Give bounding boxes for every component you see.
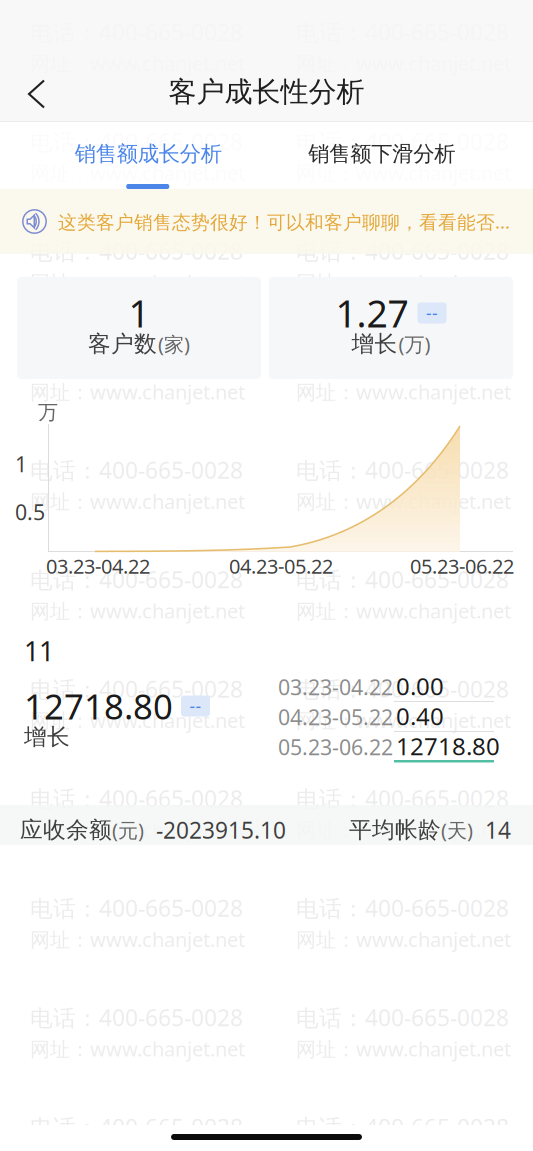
staticText: 1: [15, 450, 27, 478]
staticText: 03.23-04.22: [278, 673, 393, 701]
staticText: 电话：400-665-0028: [296, 1112, 509, 1142]
staticText: 网址：www.chanjet.net: [30, 926, 245, 953]
staticText: 03.23-04.22: [46, 553, 150, 579]
staticText: 网址：www.chanjet.net: [30, 269, 245, 296]
staticText: 销售额下滑分析: [308, 141, 455, 167]
staticText: 这类客户销售态势很好！可以和客户聊聊，看看能否获...: [58, 209, 514, 234]
staticText: 网址：www.chanjet.net: [30, 707, 245, 734]
staticText: 客户成长性分析: [168, 75, 364, 109]
staticText: 电话：400-665-0028: [30, 783, 243, 813]
staticText: 14: [473, 815, 511, 845]
staticText: 网址：www.chanjet.net: [296, 816, 511, 843]
staticText: 电话：400-665-0028: [296, 126, 509, 156]
staticText: 销售额成长分析: [75, 141, 222, 167]
staticText: (家): [158, 331, 190, 357]
staticText: 电话：400-665-0028: [296, 236, 509, 266]
staticText: 0.5: [15, 498, 45, 526]
staticText: 网址：www.chanjet.net: [296, 488, 511, 515]
staticText: 1.27: [335, 288, 408, 338]
staticText: 网址：www.chanjet.net: [296, 378, 511, 405]
staticText: 电话：400-665-0028: [30, 345, 243, 375]
staticText: 11: [24, 633, 54, 669]
staticText: 电话：400-665-0028: [296, 783, 509, 813]
button[interactable]: Back: [0, 70, 71, 114]
staticText: 网址：www.chanjet.net: [30, 1035, 245, 1062]
staticText: 电话：400-665-0028: [30, 236, 243, 266]
staticText: (天): [441, 817, 473, 843]
staticText: 客户数: [88, 330, 157, 358]
staticText: 万: [38, 400, 58, 425]
staticText: 网址：www.chanjet.net: [296, 159, 511, 186]
staticText: 电话：400-665-0028: [30, 455, 243, 485]
staticText: 网址：www.chanjet.net: [30, 159, 245, 186]
staticText: (元): [112, 817, 144, 843]
staticText: 网址：www.chanjet.net: [296, 1035, 511, 1062]
staticText: 12718.80: [396, 730, 500, 762]
staticText: 网址：www.chanjet.net: [30, 597, 245, 624]
staticText: 电话：400-665-0028: [30, 126, 243, 156]
staticText: 电话：400-665-0028: [296, 455, 509, 485]
staticText: 应收余额: [20, 816, 112, 844]
staticText: 网址：www.chanjet.net: [30, 488, 245, 515]
staticText: 1: [128, 288, 149, 338]
staticText: 网址：www.chanjet.net: [296, 597, 511, 624]
staticText: 电话：400-665-0028: [296, 345, 509, 375]
staticText: 04.23-05.22: [278, 703, 393, 731]
button[interactable]: 销售额成长分析: [0, 122, 266, 189]
staticText: (万): [398, 331, 430, 357]
staticText: 电话：400-665-0028: [30, 893, 243, 923]
staticText: 网址：www.chanjet.net: [30, 378, 245, 405]
staticText: 05.23-06.22: [410, 553, 514, 579]
staticText: 电话：400-665-0028: [30, 1112, 243, 1142]
button[interactable]: 销售额下滑分析: [266, 122, 533, 189]
staticText: 网址：www.chanjet.net: [296, 707, 511, 734]
staticText: 电话：400-665-0028: [30, 674, 243, 704]
staticText: 平均帐龄: [349, 816, 441, 844]
staticText: 0.00: [396, 670, 444, 702]
staticText: 增长: [351, 330, 397, 358]
staticText: 网址：www.chanjet.net: [296, 926, 511, 953]
staticText: --: [426, 301, 438, 324]
staticText: 电话：400-665-0028: [296, 1002, 509, 1032]
staticText: 0.40: [396, 700, 444, 732]
staticText: 电话：400-665-0028: [296, 564, 509, 594]
staticText: 网址：www.chanjet.net: [30, 816, 245, 843]
staticText: 电话：400-665-0028: [296, 674, 509, 704]
staticText: 电话：400-665-0028: [296, 893, 509, 923]
staticText: 04.23-05.22: [229, 553, 333, 579]
staticText: -2023915.10: [144, 815, 286, 845]
staticText: 电话：400-665-0028: [30, 1002, 243, 1032]
staticText: 05.23-06.22: [278, 733, 393, 761]
staticText: 增长: [24, 723, 70, 751]
staticText: 网址：www.chanjet.net: [296, 269, 511, 296]
staticText: --: [189, 694, 201, 717]
staticText: 电话：400-665-0028: [30, 564, 243, 594]
staticText: 12718.80: [24, 683, 173, 729]
